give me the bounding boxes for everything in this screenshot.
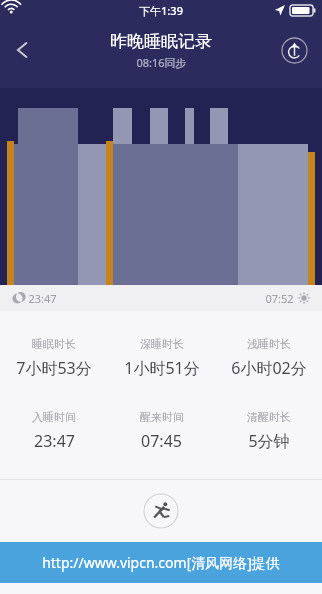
staticText: 08:16同步: [136, 55, 187, 70]
staticText: http://www.vipcn.com[清风网络]提供: [42, 553, 280, 572]
button[interactable]: 睡眠时长: [0, 337, 108, 379]
button[interactable]: 深睡时长: [108, 337, 215, 379]
staticText: 6小时02分: [231, 357, 307, 379]
staticText: 1小时51分: [124, 357, 200, 379]
staticText: 07:45: [141, 430, 182, 452]
staticText: 醒来时间: [140, 410, 184, 424]
button[interactable]: 浅睡时长: [215, 337, 322, 379]
staticText: 入睡时间: [32, 410, 76, 424]
button[interactable]: Activity: [143, 493, 179, 529]
button[interactable]: 清醒时长: [215, 410, 322, 452]
staticText: 23:47: [34, 430, 75, 452]
staticText: 5分钟: [248, 430, 290, 452]
staticText: 浅睡时长: [247, 337, 291, 351]
staticText: 清醒时长: [247, 410, 291, 424]
staticText: 深睡时长: [140, 337, 184, 351]
staticText: 7小时53分: [16, 357, 92, 379]
staticText: 07:52: [265, 291, 294, 306]
button[interactable]: Back: [0, 27, 46, 73]
staticText: 睡眠时长: [32, 337, 76, 351]
button[interactable]: 入睡时间: [0, 410, 108, 452]
button[interactable]: Share: [274, 30, 314, 70]
button[interactable]: 醒来时间: [108, 410, 215, 452]
staticText: 23:47: [28, 291, 57, 306]
staticText: 昨晚睡眠记录: [110, 31, 212, 52]
staticText: 下午1:39: [139, 3, 183, 18]
